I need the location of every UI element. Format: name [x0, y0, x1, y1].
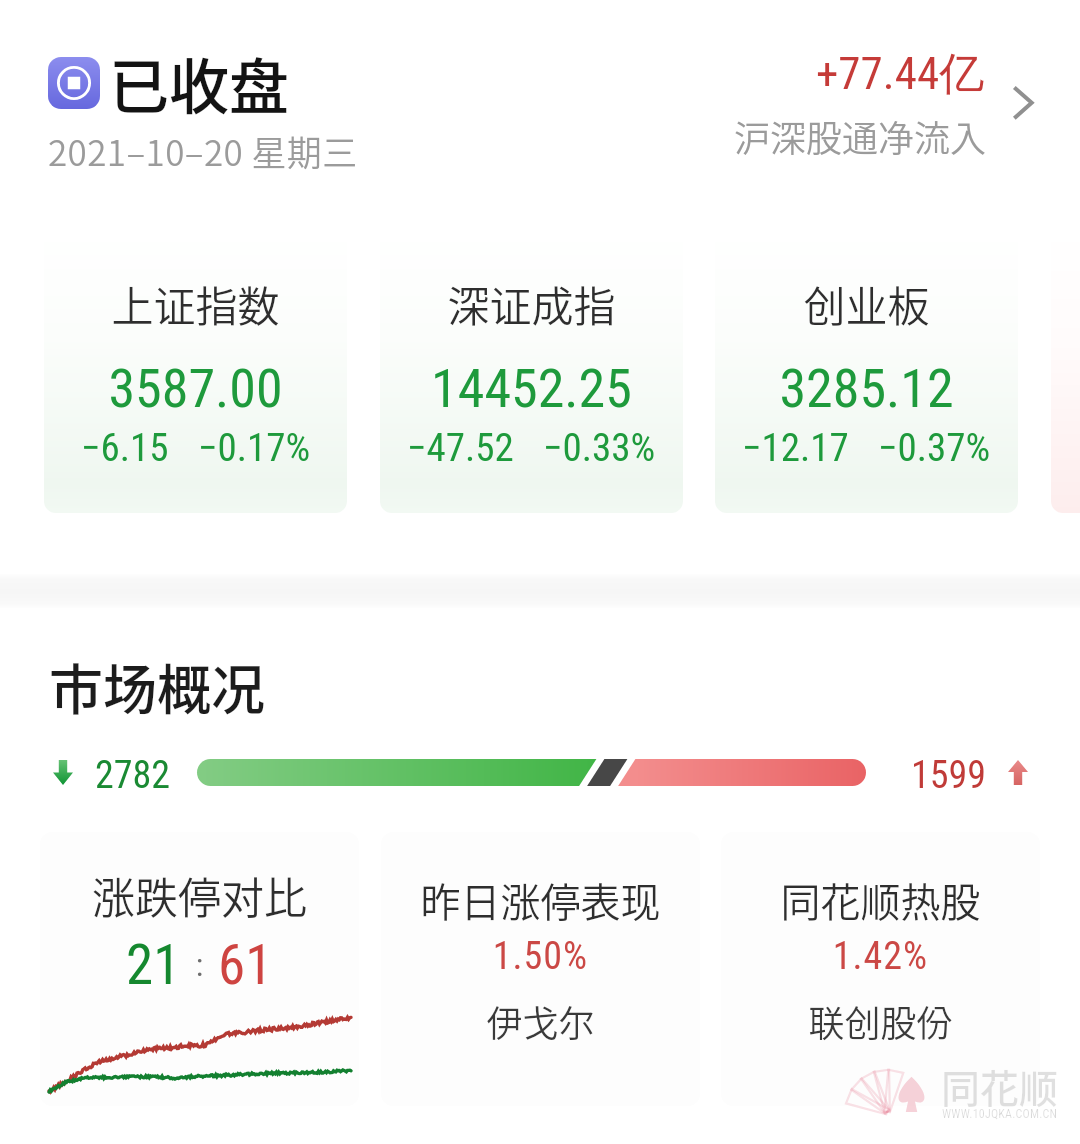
- staticText: −0.17%: [198, 425, 311, 471]
- staticText: 创业板: [715, 273, 1018, 334]
- staticText: 伊戈尔: [381, 995, 700, 1047]
- staticText: :: [181, 946, 218, 984]
- button[interactable]: [715, 228, 1018, 513]
- staticText: 已收盘: [109, 39, 289, 126]
- staticText: 1.42%: [721, 934, 1040, 979]
- staticText: 沪深股通净流入: [734, 110, 987, 162]
- staticText: 同花顺热股: [721, 871, 1040, 929]
- staticText: 涨跌停对比: [40, 864, 359, 926]
- button[interactable]: [381, 832, 700, 1106]
- staticText: +77.44亿: [816, 46, 985, 103]
- staticText: 3587.00: [44, 357, 347, 420]
- staticText: 3285.12: [715, 357, 1018, 420]
- button[interactable]: 沪深股通净流入详情: [995, 60, 1051, 116]
- staticText: 昨日涨停表现: [381, 871, 700, 929]
- staticText: 同花顺: [941, 1058, 1059, 1114]
- button[interactable]: [721, 832, 1040, 1106]
- staticText: 联创股份: [721, 995, 1040, 1047]
- staticText: WWW.10JQKA.COM.CN: [942, 1107, 1058, 1121]
- staticText: 21: [126, 933, 181, 997]
- staticText: −6.15: [81, 425, 169, 471]
- staticText: 61: [218, 933, 273, 997]
- staticText: 14452.25: [380, 357, 683, 420]
- button[interactable]: [1051, 228, 1080, 513]
- staticText: 2021–10–20 星期三: [48, 125, 358, 176]
- button[interactable]: 市场状态: [48, 57, 100, 109]
- staticText: 上证指数: [44, 273, 347, 334]
- staticText: 2782: [95, 753, 171, 798]
- staticText: −0.33%: [543, 425, 656, 471]
- staticText: −0.37%: [878, 425, 991, 471]
- staticText: −12.17: [742, 425, 849, 471]
- button[interactable]: [44, 228, 347, 513]
- button[interactable]: 涨跌家数比例: [197, 759, 866, 786]
- staticText: 市场概况: [49, 647, 265, 725]
- staticText: 1599: [911, 753, 987, 798]
- staticText: −47.52: [407, 425, 514, 471]
- button[interactable]: [40, 832, 359, 1106]
- staticText: 1.50%: [381, 934, 700, 979]
- staticText: 深证成指: [380, 273, 683, 334]
- button[interactable]: [380, 228, 683, 513]
